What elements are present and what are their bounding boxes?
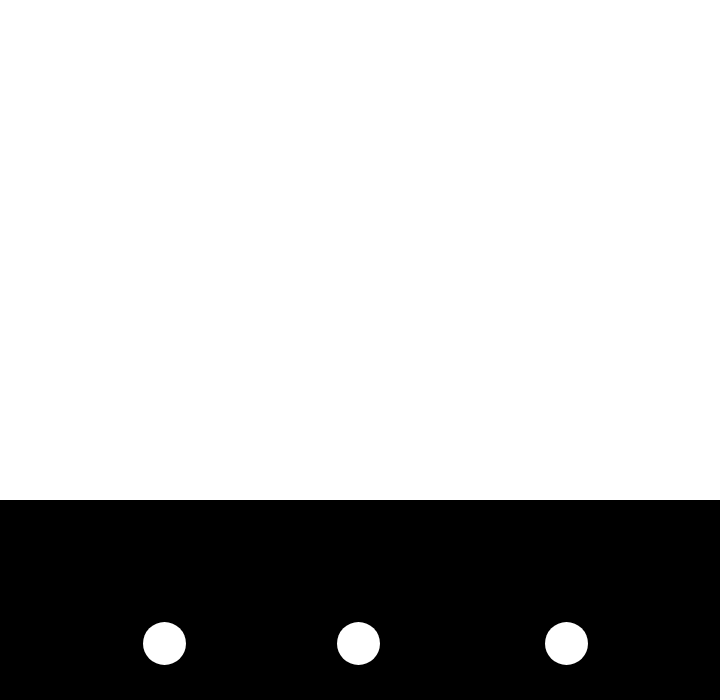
button[interactable]: Play	[337, 622, 380, 665]
button[interactable]: Next	[545, 622, 588, 665]
button[interactable]: Previous	[143, 622, 186, 665]
